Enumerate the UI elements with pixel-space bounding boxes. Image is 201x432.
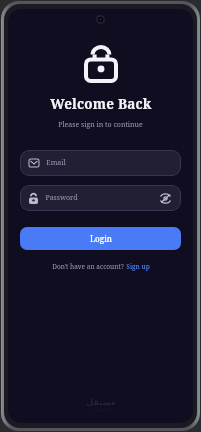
button[interactable]: Sign up — [125, 261, 151, 272]
staticText: Please sign in to continue — [58, 120, 143, 130]
staticText: مستقل — [86, 398, 116, 407]
staticText: Welcome Back — [50, 95, 152, 113]
button[interactable]: Password — [20, 185, 181, 211]
staticText: Don't have an account? — [51, 262, 125, 271]
button[interactable]: Show password — [158, 191, 172, 205]
button[interactable]: Email — [20, 150, 181, 176]
button[interactable]: Login — [20, 227, 181, 250]
staticText: Sign up — [126, 262, 150, 271]
staticText: Email — [46, 158, 66, 168]
staticText: Password — [45, 193, 78, 203]
staticText: Login — [90, 233, 112, 244]
